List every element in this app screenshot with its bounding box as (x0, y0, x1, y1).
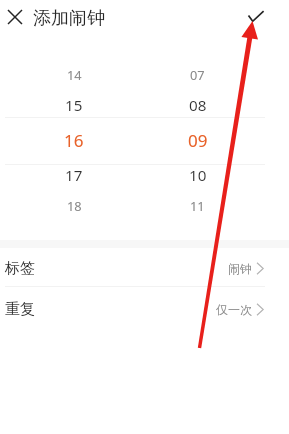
button[interactable]: 09 (148, 127, 247, 153)
button[interactable]: 18 (0, 192, 148, 218)
button[interactable]: 标签 (0, 249, 289, 287)
staticText: 08 (189, 95, 207, 116)
staticText: 闹钟 (228, 261, 252, 276)
button[interactable]: 17 (0, 162, 148, 188)
staticText: 15 (65, 95, 83, 116)
button[interactable]: 11 (148, 192, 247, 218)
button[interactable]: 确定 (237, 0, 275, 35)
staticText: 11 (190, 197, 205, 214)
button[interactable]: 关闭 (0, 0, 32, 34)
staticText: 07 (190, 66, 205, 83)
staticText: 14 (67, 66, 82, 83)
staticText: 18 (67, 197, 82, 214)
button[interactable]: 14 (0, 61, 148, 87)
staticText: 10 (189, 165, 207, 186)
button[interactable]: 07 (148, 61, 247, 87)
staticText: 仅一次 (216, 302, 252, 317)
button[interactable]: 重复 (0, 289, 289, 329)
staticText: 添加闹钟 (33, 7, 105, 30)
staticText: 09 (188, 129, 208, 152)
button[interactable]: 15 (0, 92, 148, 118)
staticText: 重复 (5, 300, 35, 319)
staticText: 17 (65, 165, 83, 186)
staticText: 标签 (5, 259, 35, 278)
staticText: 16 (64, 129, 84, 152)
button[interactable]: 16 (0, 127, 148, 153)
button[interactable]: 08 (148, 92, 247, 118)
button[interactable]: 10 (148, 162, 247, 188)
